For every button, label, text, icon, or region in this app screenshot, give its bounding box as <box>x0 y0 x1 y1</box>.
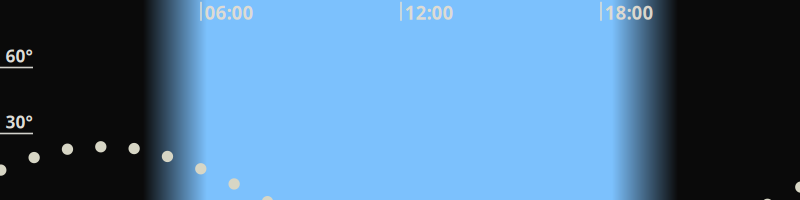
staticText: 18:00 <box>604 0 653 25</box>
staticText: 06:00 <box>204 0 253 25</box>
staticText: 60° <box>5 44 32 67</box>
button[interactable]: Moon altitude chart <box>0 0 800 200</box>
staticText: 12:00 <box>404 0 453 25</box>
staticText: 30° <box>5 110 32 133</box>
